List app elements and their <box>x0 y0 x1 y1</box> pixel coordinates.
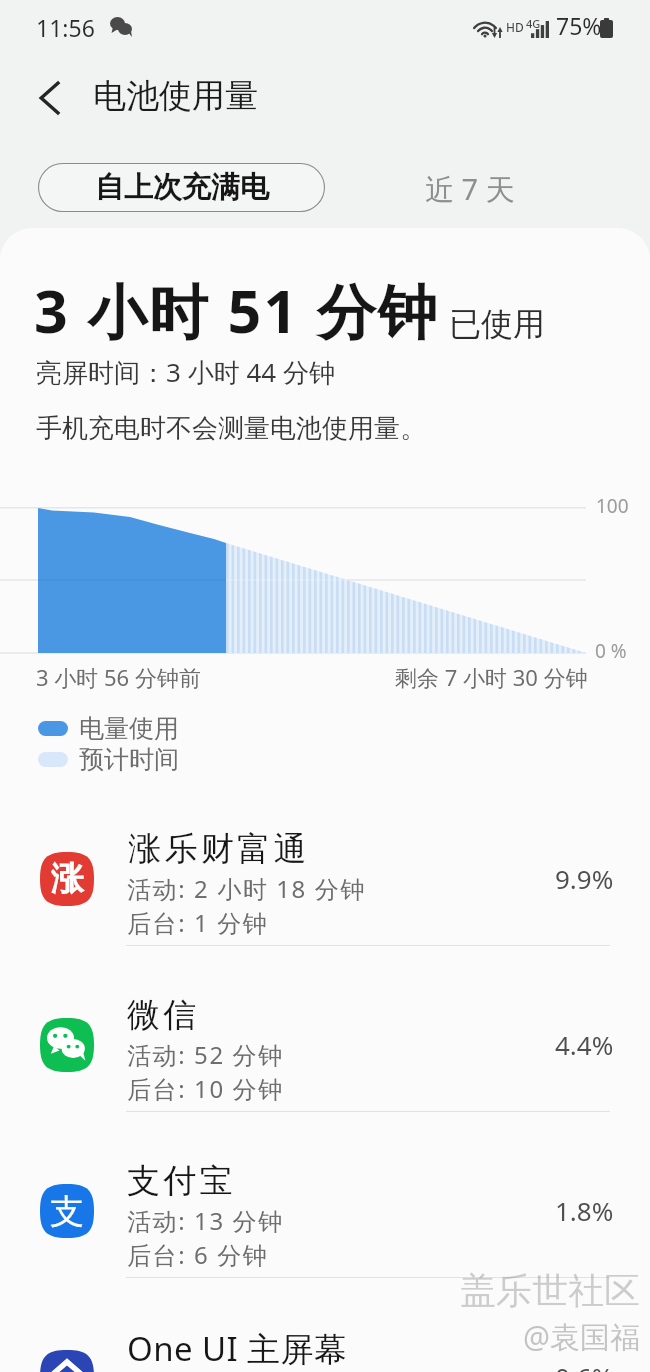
staticText: 100 <box>596 493 629 519</box>
button[interactable]: 自上次充满电 <box>38 163 325 212</box>
staticText: 活动: 2 小时 18 分钟 <box>127 872 366 905</box>
staticText: 3 小时 51 分钟 <box>34 270 440 351</box>
staticText: 电池使用量 <box>93 75 258 117</box>
staticText: 活动: 52 分钟 <box>127 1038 284 1071</box>
button[interactable]: One UI 主屏幕 <box>0 1277 650 1372</box>
staticText: @袁国福 <box>523 1316 640 1357</box>
staticText: 后台: 10 分钟 <box>127 1072 284 1105</box>
staticText: 近 7 天 <box>425 169 515 209</box>
staticText: 4G <box>526 16 541 31</box>
staticText: 盖乐世社区 <box>460 1268 640 1313</box>
staticText: 预计时间 <box>79 744 179 775</box>
staticText: 1.8% <box>555 1193 614 1228</box>
staticText: 3 小时 56 分钟前 <box>36 662 201 692</box>
staticText: 手机充电时不会测量电池使用量。 <box>36 412 426 445</box>
staticText: One UI 主屏幕 <box>127 1326 348 1371</box>
staticText: 电量使用 <box>79 713 179 744</box>
staticText: 75% <box>556 10 602 41</box>
staticText: 已使用 <box>449 304 545 344</box>
button[interactable]: 微信 <box>0 945 650 1111</box>
button[interactable]: 近 7 天 <box>409 157 531 221</box>
staticText: 4.4% <box>555 1027 614 1062</box>
staticText: 涨乐财富通 <box>127 828 308 870</box>
staticText: 支 <box>50 1190 84 1233</box>
staticText: 活动: 13 分钟 <box>127 1204 284 1237</box>
staticText: 后台: 1 分钟 <box>127 906 269 939</box>
staticText: 0.6% <box>555 1359 614 1372</box>
button[interactable]: Back <box>22 70 78 126</box>
staticText: 0 % <box>595 638 627 664</box>
button[interactable]: 支 <box>0 1111 650 1277</box>
staticText: 亮屏时间：3 小时 44 分钟 <box>36 354 335 390</box>
staticText: 剩余 7 小时 30 分钟 <box>395 662 588 692</box>
staticText: 9.9% <box>555 861 614 896</box>
staticText: 微信 <box>127 994 200 1036</box>
button[interactable]: 涨 <box>0 779 650 945</box>
staticText: 涨 <box>51 858 84 900</box>
staticText: HD <box>506 19 524 35</box>
staticText: 支付宝 <box>127 1160 236 1202</box>
staticText: 后台: 6 分钟 <box>127 1238 269 1271</box>
staticText: 自上次充满电 <box>95 169 269 206</box>
staticText: 11:56 <box>36 12 95 43</box>
